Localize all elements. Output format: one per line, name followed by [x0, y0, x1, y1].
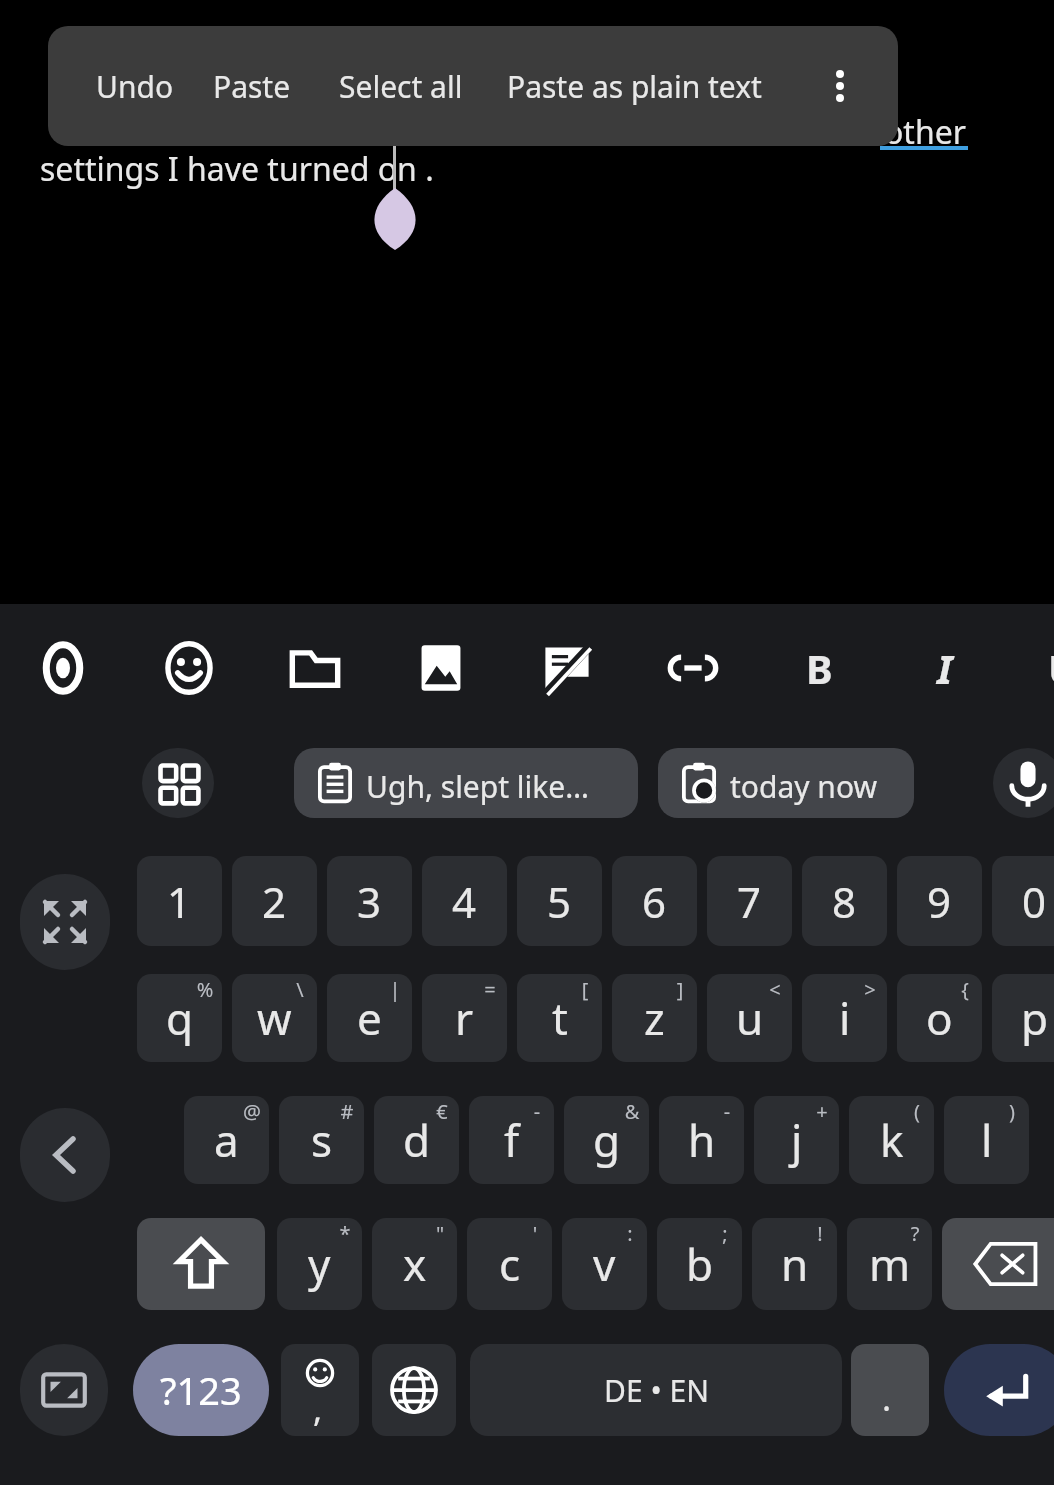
staticText: 0 [1022, 873, 1047, 930]
staticText: Paste [213, 66, 291, 107]
staticText: u [736, 988, 764, 1048]
button[interactable]: Backspace [942, 1218, 1054, 1310]
staticText: 1 [167, 873, 192, 930]
button[interactable] [137, 856, 222, 946]
button[interactable]: U [1036, 641, 1054, 695]
button[interactable] [277, 1218, 362, 1310]
button[interactable] [897, 974, 982, 1062]
button[interactable]: Files [288, 641, 342, 695]
button[interactable] [232, 856, 317, 946]
staticText: 6 [642, 873, 667, 930]
button[interactable] [992, 974, 1054, 1062]
button[interactable] [659, 1096, 744, 1184]
button[interactable]: Shift [137, 1218, 265, 1310]
staticText: Select all [339, 66, 463, 107]
button[interactable]: Paste [196, 26, 308, 146]
button[interactable]: I [918, 641, 972, 695]
button[interactable]: Emoji [162, 641, 216, 695]
button[interactable]: Select all [326, 26, 476, 146]
button[interactable]: Period [851, 1344, 929, 1436]
staticText: t [552, 988, 568, 1048]
button[interactable]: Voice input [1001, 756, 1054, 810]
button[interactable] [612, 856, 697, 946]
button[interactable] [184, 1096, 269, 1184]
button[interactable] [658, 748, 914, 818]
button[interactable]: Resize keyboard [38, 1364, 90, 1416]
button[interactable]: Expand keyboard [40, 897, 90, 947]
button[interactable] [612, 974, 697, 1062]
button[interactable] [142, 748, 214, 818]
staticText: * [331, 1220, 359, 1252]
button[interactable] [897, 856, 982, 946]
button[interactable] [564, 1096, 649, 1184]
button[interactable]: B [792, 641, 846, 695]
staticText: w [257, 988, 292, 1048]
button[interactable] [20, 1108, 110, 1202]
button[interactable]: More options [800, 26, 880, 146]
button[interactable]: Previous [40, 1130, 90, 1180]
button[interactable] [422, 974, 507, 1062]
staticText: Ugh, slept like… [366, 766, 590, 807]
staticText: v [593, 1234, 616, 1294]
button[interactable]: Link [666, 641, 720, 695]
staticText: x [403, 1234, 427, 1294]
staticText: k [880, 1110, 904, 1170]
button[interactable] [20, 1344, 108, 1436]
button[interactable] [374, 1096, 459, 1184]
staticText: U [1048, 641, 1054, 695]
button[interactable] [517, 974, 602, 1062]
button[interactable] [802, 856, 887, 946]
button[interactable] [294, 748, 638, 818]
button[interactable] [849, 1096, 934, 1184]
button[interactable] [422, 856, 507, 946]
staticText: j [791, 1110, 803, 1170]
button[interactable] [232, 974, 317, 1062]
staticText: today now [730, 766, 878, 807]
staticText: d [403, 1110, 431, 1170]
staticText: & [618, 1098, 646, 1130]
button[interactable] [707, 856, 792, 946]
button[interactable] [657, 1218, 742, 1310]
button[interactable]: Clipboard items [155, 760, 201, 806]
button[interactable] [467, 1218, 552, 1310]
staticText: DE • EN [604, 1370, 709, 1411]
button[interactable]: ?123 [133, 1344, 269, 1436]
staticText: \ [286, 976, 314, 1008]
button[interactable] [517, 856, 602, 946]
staticText: m [869, 1234, 911, 1294]
staticText: settings I have turned on . [40, 147, 434, 191]
button[interactable] [993, 748, 1054, 818]
button[interactable] [469, 1096, 554, 1184]
staticText: f [504, 1110, 520, 1170]
button[interactable]: Preview [36, 641, 90, 695]
staticText: c [499, 1234, 521, 1294]
button[interactable]: Image [414, 641, 468, 695]
staticText: a [214, 1110, 239, 1170]
button[interactable] [20, 874, 110, 970]
button[interactable] [802, 974, 887, 1062]
button[interactable] [992, 856, 1054, 946]
button[interactable] [752, 1218, 837, 1310]
button[interactable] [944, 1096, 1029, 1184]
button[interactable]: DE • EN [470, 1344, 842, 1436]
staticText: @ [238, 1098, 266, 1130]
staticText: : [616, 1220, 644, 1252]
staticText: € [428, 1098, 456, 1130]
button[interactable]: Emoji and comma [281, 1344, 359, 1436]
button[interactable]: Switch language [372, 1344, 456, 1436]
button[interactable] [707, 974, 792, 1062]
staticText: > [856, 976, 884, 1008]
button[interactable] [327, 856, 412, 946]
button[interactable] [327, 974, 412, 1062]
button[interactable] [279, 1096, 364, 1184]
button[interactable] [562, 1218, 647, 1310]
button[interactable]: Undo [80, 26, 190, 146]
button[interactable] [754, 1096, 839, 1184]
button[interactable] [847, 1218, 932, 1310]
staticText: 2 [262, 873, 287, 930]
button[interactable]: Comments off [540, 641, 594, 695]
button[interactable]: Enter [944, 1344, 1054, 1436]
button[interactable] [137, 974, 222, 1062]
button[interactable]: Paste as plain text [500, 26, 768, 146]
button[interactable] [372, 1218, 457, 1310]
